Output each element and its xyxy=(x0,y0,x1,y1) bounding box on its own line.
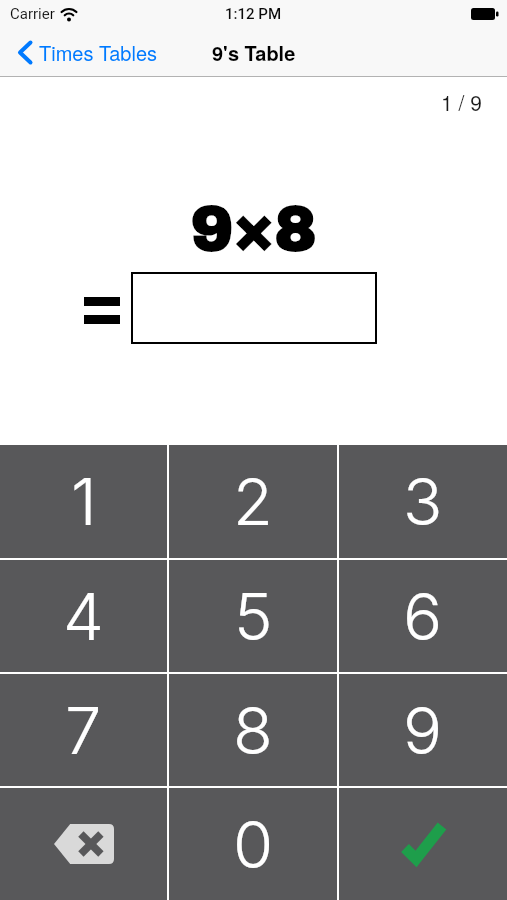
button[interactable]: Times Tables xyxy=(18,38,158,67)
button[interactable]: 0 xyxy=(169,788,337,900)
staticText: 1 / 9 xyxy=(441,87,482,117)
staticText: Times Tables xyxy=(39,38,158,67)
staticText: 6 xyxy=(403,577,443,656)
button[interactable]: 1 xyxy=(0,445,167,558)
button[interactable]: 5 xyxy=(169,560,337,672)
button[interactable]: 3 xyxy=(339,445,507,558)
staticText: Carrier xyxy=(10,5,55,23)
button[interactable]: 6 xyxy=(339,560,507,672)
staticText: 2 xyxy=(233,462,273,541)
staticText: 1 xyxy=(71,462,97,541)
button[interactable] xyxy=(0,788,167,900)
staticText: 9×8 xyxy=(191,195,317,264)
staticText: 0 xyxy=(233,805,274,884)
button[interactable] xyxy=(339,788,507,900)
staticText: 8 xyxy=(233,691,273,770)
staticText: 9 xyxy=(403,691,443,770)
button[interactable]: 8 xyxy=(169,674,337,786)
button[interactable]: 7 xyxy=(0,674,167,786)
staticText: 1:12 PM xyxy=(225,5,282,23)
button[interactable]: 2 xyxy=(169,445,337,558)
button[interactable] xyxy=(131,272,377,344)
button[interactable]: 4 xyxy=(0,560,167,672)
staticText: 7 xyxy=(65,691,102,770)
staticText: 9's Table xyxy=(212,38,296,67)
staticText: 4 xyxy=(63,577,104,656)
button[interactable]: 9 xyxy=(339,674,507,786)
staticText: 5 xyxy=(234,577,273,656)
staticText: 3 xyxy=(403,462,443,541)
